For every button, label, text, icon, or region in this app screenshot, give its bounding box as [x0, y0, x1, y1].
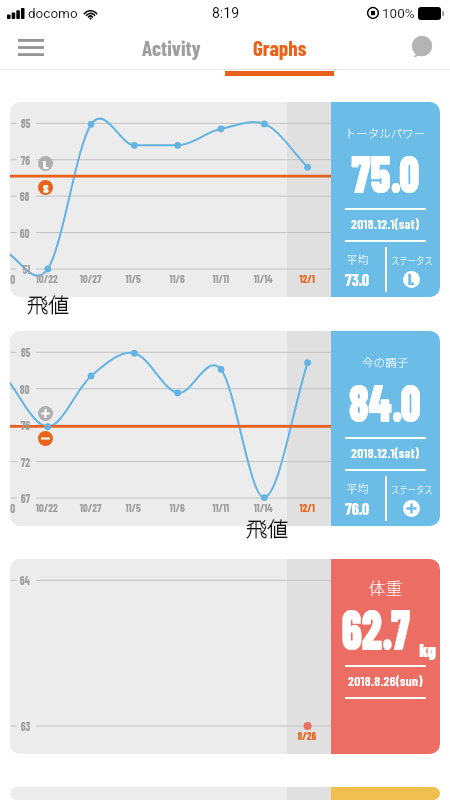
staticText: 体重	[369, 575, 402, 600]
staticText: 今の調子	[362, 353, 409, 370]
staticText: 10/22	[36, 500, 58, 514]
staticText: 60	[20, 225, 30, 240]
staticText: ステータス	[391, 252, 433, 269]
staticText: 11/11	[212, 500, 229, 514]
staticText: 12/1	[299, 271, 315, 285]
button[interactable]: 64	[10, 559, 440, 754]
staticText: 62.7	[342, 594, 410, 661]
staticText: 11/14	[254, 500, 273, 514]
staticText: 76	[21, 417, 30, 432]
staticText: 0	[10, 271, 16, 286]
staticText: 2018.12.1(sat)	[351, 444, 420, 460]
button[interactable]	[10, 787, 440, 800]
staticText: 飛値	[27, 289, 69, 319]
staticText: 76.0	[345, 499, 370, 519]
staticText: Graphs	[253, 35, 307, 60]
staticText: 67	[21, 490, 30, 505]
button[interactable]: Graphs	[225, 26, 334, 69]
staticText: 12/1	[299, 500, 315, 514]
staticText: 80	[20, 381, 30, 396]
staticText: docomo	[28, 5, 78, 21]
staticText: 85	[21, 344, 30, 359]
staticText: 2018.8.26(sun)	[348, 672, 423, 688]
staticText: 75.0	[351, 141, 419, 203]
staticText: 84.0	[349, 370, 421, 432]
button[interactable]: 85	[10, 331, 440, 526]
staticText: 11/11	[212, 271, 229, 285]
staticText: 10/27	[80, 271, 101, 285]
staticText: トータルパワー	[345, 124, 426, 141]
staticText: 11/5	[125, 271, 141, 285]
staticText: 8:19	[212, 5, 239, 21]
staticText: 11/6	[169, 271, 185, 285]
button[interactable]: Menu	[0, 26, 62, 69]
staticText: 51	[22, 261, 30, 276]
button[interactable]: Messages	[392, 26, 450, 69]
staticText: 100%	[382, 5, 415, 21]
staticText: 68	[20, 188, 30, 203]
staticText: 64	[20, 572, 30, 587]
staticText: 飛値	[246, 513, 288, 543]
staticText: 85	[21, 115, 30, 130]
staticText: 11/6	[169, 500, 185, 514]
staticText: L	[408, 271, 415, 288]
staticText: ステータス	[391, 481, 433, 498]
staticText: 2018.12.1(sat)	[351, 215, 420, 231]
staticText: 72	[21, 454, 30, 469]
staticText: 76	[21, 152, 30, 167]
staticText: 11/5	[125, 500, 141, 514]
button[interactable]: 85	[10, 102, 440, 297]
staticText: 8/26	[298, 728, 316, 742]
staticText: 平均	[347, 480, 368, 497]
staticText: 平均	[347, 251, 368, 268]
staticText: 11/14	[254, 271, 273, 285]
staticText: 10/27	[80, 500, 101, 514]
button[interactable]: Activity	[133, 26, 210, 69]
staticText: 10/22	[36, 271, 58, 285]
staticText: Activity	[142, 35, 201, 60]
staticText: L	[43, 157, 49, 171]
staticText: kg	[419, 638, 437, 661]
staticText: 0	[10, 500, 16, 515]
staticText: 73.0	[345, 270, 370, 290]
staticText: S	[43, 181, 49, 195]
staticText: 63	[21, 718, 30, 733]
